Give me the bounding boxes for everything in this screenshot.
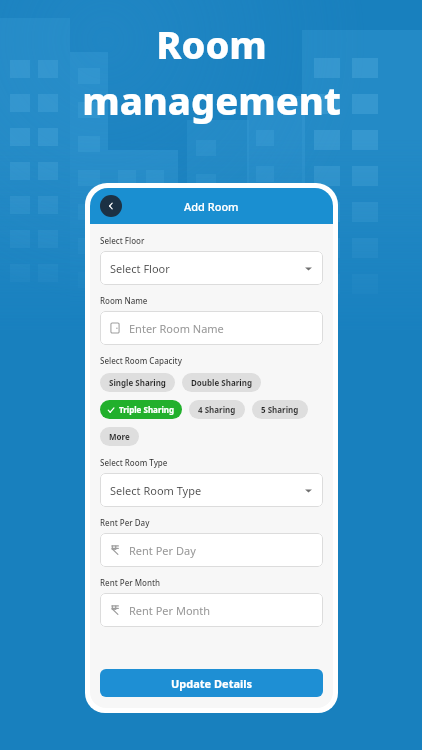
staticText: Add Room — [184, 199, 239, 214]
button[interactable]: Select Floor — [100, 251, 323, 285]
button[interactable]: Double Sharing — [182, 373, 261, 392]
staticText: Select Floor — [110, 261, 170, 276]
staticText: More — [109, 431, 130, 442]
button[interactable]: Rent Per Month — [100, 593, 323, 627]
staticText: Double Sharing — [191, 377, 252, 388]
staticText: Select Room Type — [110, 483, 202, 498]
staticText: Select Floor — [100, 235, 145, 246]
staticText: Room Name — [100, 295, 148, 306]
staticText: 5 Sharing — [261, 404, 299, 415]
staticText: Enter Room Name — [129, 321, 224, 336]
button[interactable]: Single Sharing — [100, 373, 175, 392]
staticText: Triple Sharing — [119, 404, 175, 415]
staticText: 4 Sharing — [198, 404, 236, 415]
staticText: Select Room Type — [100, 457, 168, 468]
button[interactable]: Select Room Type — [100, 473, 323, 507]
staticText: Rent Per Day — [100, 517, 150, 528]
staticText: Room — [156, 18, 267, 70]
button[interactable]: Update Details — [100, 669, 323, 697]
button[interactable]: 4 Sharing — [189, 400, 245, 419]
staticText: Rent Per Month — [100, 577, 161, 588]
button[interactable]: Triple Sharing — [100, 400, 182, 419]
button[interactable]: Enter Room Name — [100, 311, 323, 345]
staticText: Rent Per Day — [129, 543, 196, 558]
staticText: Select Room Capacity — [100, 355, 182, 366]
button[interactable]: Rent Per Day — [100, 533, 323, 567]
staticText: Update Details — [171, 676, 253, 691]
staticText: Rent Per Month — [129, 603, 211, 618]
staticText: Single Sharing — [109, 377, 166, 388]
button[interactable]: 5 Sharing — [252, 400, 308, 419]
staticText: management — [82, 74, 341, 126]
button[interactable]: Back — [100, 195, 122, 217]
button[interactable]: More — [100, 427, 139, 446]
